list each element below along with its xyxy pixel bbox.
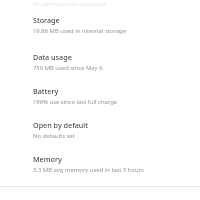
staticText: Memory — [33, 154, 62, 164]
staticText: Data usage — [33, 52, 72, 62]
staticText: Storage — [33, 15, 60, 25]
staticText: Open by default — [33, 120, 89, 130]
staticText: 196% use since last full charge — [33, 98, 118, 106]
staticText: 19.86 MB used in internal storage — [33, 27, 127, 35]
button[interactable]: Storage — [0, 11, 200, 35]
staticText: No defaults set — [33, 132, 75, 140]
button[interactable]: No permissions requested — [0, 0, 200, 11]
button[interactable]: Battery — [0, 72, 200, 106]
button[interactable]: Data usage — [0, 35, 200, 72]
button[interactable]: Memory — [0, 140, 200, 174]
staticText: 3.3 MB avg memory used in last 3 hours — [33, 166, 144, 174]
staticText: No permissions requested — [33, 0, 106, 8]
staticText: 750 MB used since May 6 — [33, 64, 103, 72]
button[interactable]: Open by default — [0, 106, 200, 140]
staticText: Battery — [33, 86, 59, 96]
